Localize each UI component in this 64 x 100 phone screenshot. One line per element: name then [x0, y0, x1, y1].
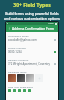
staticText: Phone Number [8, 46, 26, 49]
button[interactable]: Delivery Location [8, 58, 56, 67]
button[interactable]: Rating 2 [13, 89, 16, 92]
button[interactable]: Customer's Email [8, 34, 56, 43]
staticText: 0000-1234 [8, 50, 54, 54]
button[interactable]: Back [6, 25, 58, 32]
other: Back [8, 27, 11, 30]
button[interactable]: Photo [8, 74, 16, 82]
staticText: 30+ Field Types [13, 2, 51, 9]
staticText: Rate Your Experience [8, 85, 33, 88]
staticText: 12:30 [48, 22, 54, 25]
staticText: 7/2 Wright Apartment, Coventry [8, 62, 54, 66]
staticText: Delivery Location [8, 58, 29, 61]
staticText: Delivered Items [8, 70, 27, 73]
button[interactable]: Rating 4 [23, 89, 26, 92]
staticText: Address Confirmation Form [12, 27, 55, 31]
button[interactable]: Rating 5 [28, 89, 31, 92]
button[interactable]: Rating 1 [8, 89, 11, 92]
button[interactable]: Photo [17, 74, 25, 82]
staticText: xxxxbdfe@yahoo.com [8, 38, 54, 42]
staticText: Customer's Email [8, 34, 29, 37]
button[interactable]: Photo [26, 74, 34, 82]
staticText: Build forms using powerful fields [5, 11, 59, 16]
button[interactable]: Phone Number [8, 46, 56, 55]
button[interactable]: Rating 3 [18, 89, 21, 92]
staticText: and various customization options [4, 16, 60, 21]
